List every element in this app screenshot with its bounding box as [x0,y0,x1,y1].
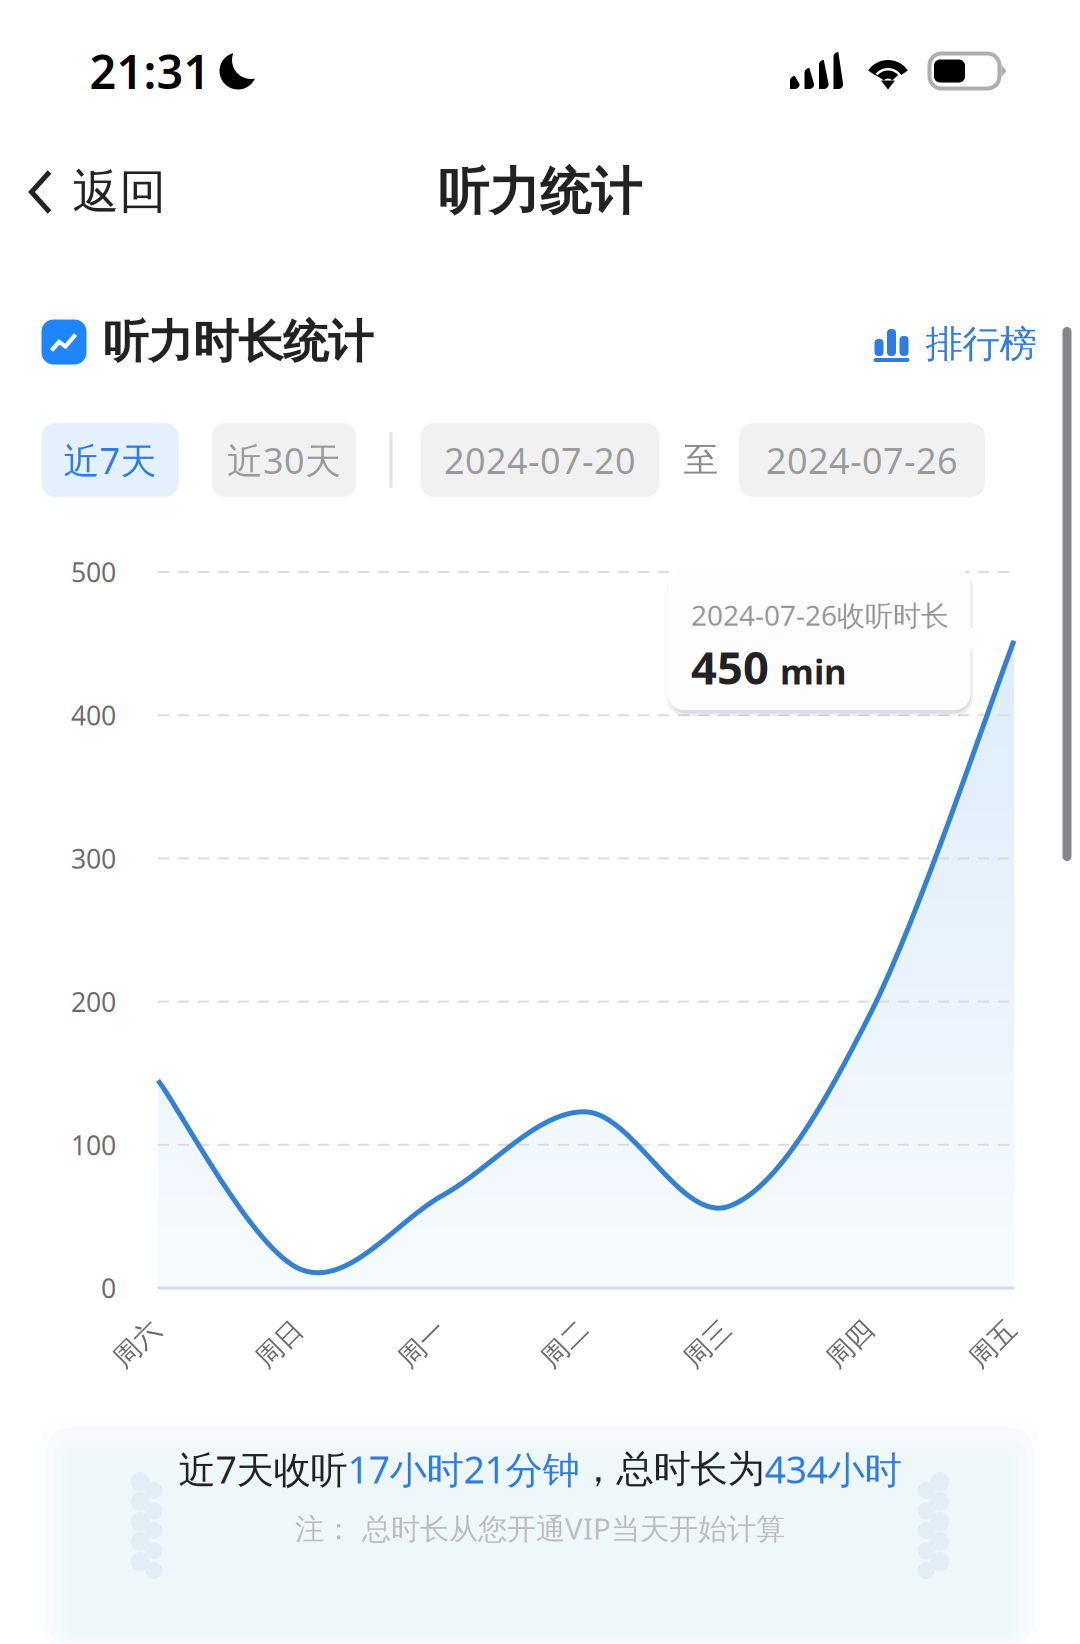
staticText: 周四 [823,1328,877,1360]
staticText: 2024-07-26 [766,436,958,484]
button[interactable]: 排行榜 [867,309,1042,379]
button[interactable]: 近30天 [212,423,356,497]
staticText: 0 [101,1270,116,1306]
staticText: 400 [71,697,116,733]
staticText: 至 [683,439,718,481]
staticText: 周日 [253,1328,307,1360]
staticText: 21:31 [89,40,210,102]
staticText: ，总时长为 [579,1446,764,1492]
staticText: 434小时 [764,1444,901,1494]
staticText: 近7天收听 [178,1444,347,1494]
staticText: 听力时长统计 [103,314,373,370]
staticText: 200 [71,984,116,1019]
button[interactable]: 2024-07-20 [420,423,659,497]
button[interactable]: 返回 [0,144,196,240]
staticText: 100 [71,1127,116,1162]
staticText: 近7天 [63,436,156,484]
staticText: 注： 总时长从您开通VIP当天开始计算 [295,1508,785,1547]
staticText: min [780,648,847,694]
staticText: 周三 [681,1328,735,1360]
staticText: 500 [71,554,116,590]
staticText: 周五 [966,1328,1020,1360]
staticText: 17小时21分钟 [347,1444,579,1494]
staticText: 2024-07-20 [444,436,636,484]
staticText: 2024-07-26收听时长 [691,596,949,634]
staticText: 周六 [110,1328,164,1360]
staticText: 周二 [538,1328,592,1360]
staticText: 300 [71,841,116,876]
staticText: 听力统计 [438,161,642,223]
staticText: 排行榜 [925,321,1036,367]
staticText: 周一 [395,1328,449,1360]
button[interactable]: 近7天 [41,423,178,497]
button[interactable]: 2024-07-26 [739,423,985,497]
staticText: 近30天 [227,436,341,484]
staticText: 返回 [72,163,166,221]
staticText: 450 [691,637,769,697]
